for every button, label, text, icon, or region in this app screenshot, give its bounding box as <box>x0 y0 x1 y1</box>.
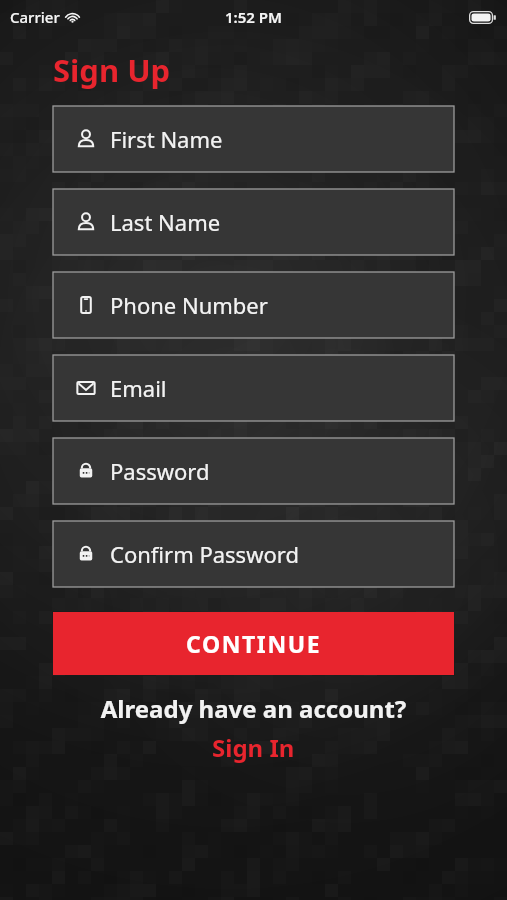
staticText: First Name <box>110 124 223 154</box>
button[interactable]: Password <box>53 438 454 504</box>
staticText: Password <box>110 456 210 486</box>
staticText: Sign Up <box>53 49 171 91</box>
button[interactable]: Email <box>53 355 454 421</box>
staticText: Last Name <box>110 207 221 237</box>
button[interactable]: Sign In <box>206 729 301 766</box>
staticText: Already have an account? <box>53 692 454 725</box>
staticText: CONTINUE <box>186 628 322 659</box>
button[interactable]: Last Name <box>53 189 454 255</box>
staticText: Confirm Password <box>110 539 299 569</box>
staticText: Email <box>110 373 167 403</box>
button[interactable]: CONTINUE <box>53 612 454 675</box>
staticText: Phone Number <box>110 290 268 320</box>
button[interactable]: Confirm Password <box>53 521 454 587</box>
staticText: 1:52 PM <box>225 7 282 27</box>
button[interactable]: First Name <box>53 106 454 172</box>
button[interactable]: Phone Number <box>53 272 454 338</box>
staticText: Carrier <box>10 7 60 27</box>
